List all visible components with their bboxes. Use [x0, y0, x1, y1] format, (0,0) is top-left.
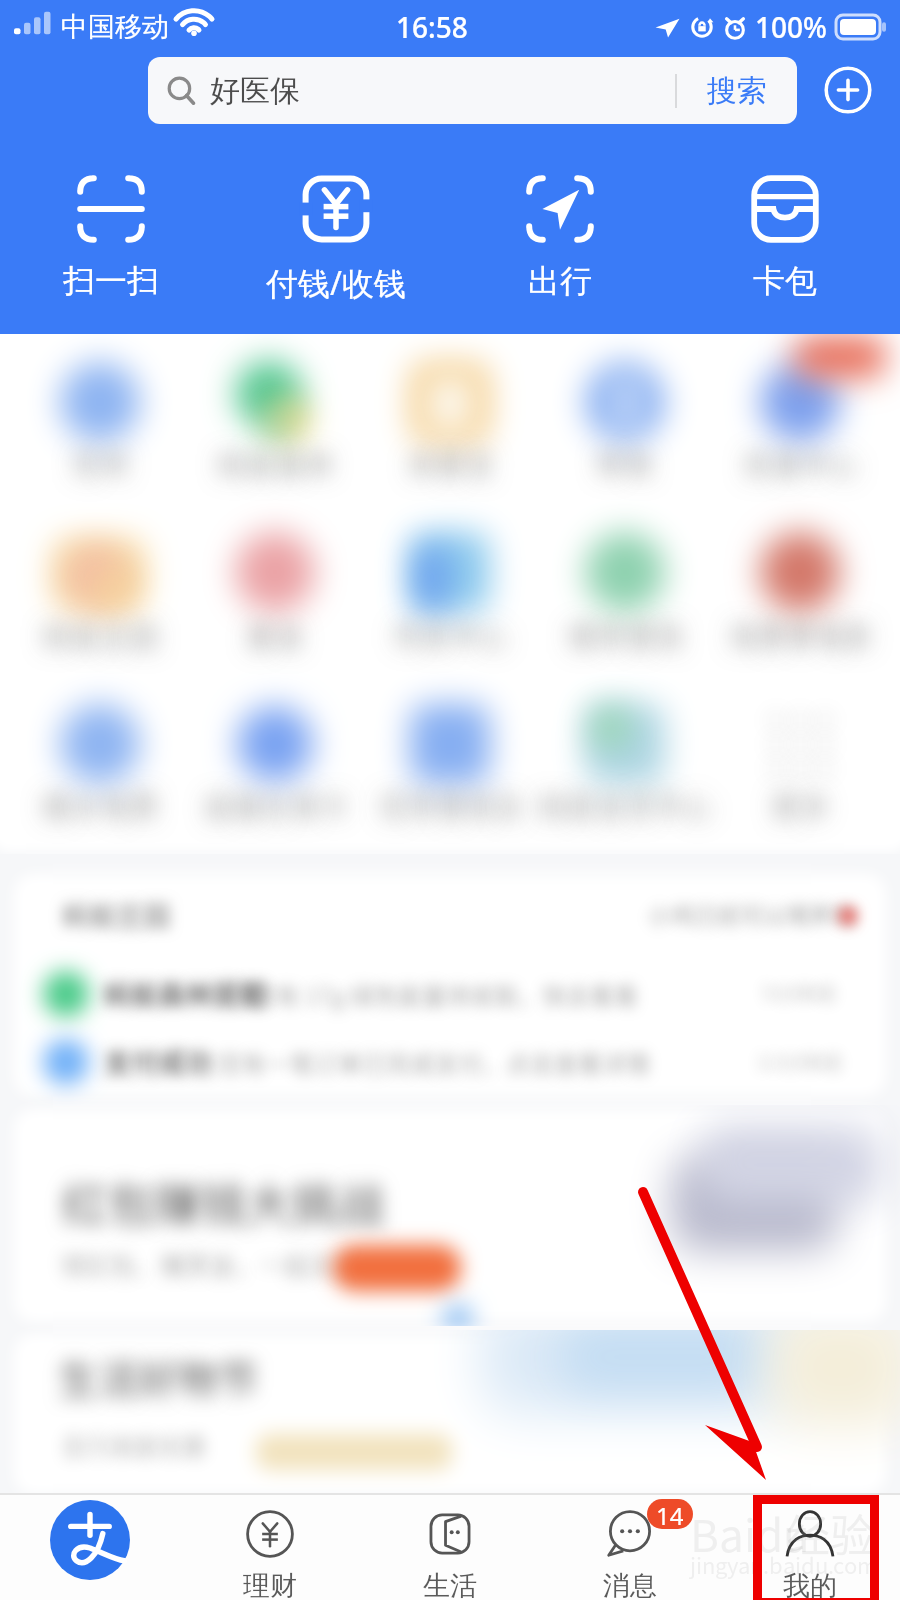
staticText: 理财 [243, 1569, 297, 1600]
button[interactable]: 首页 [0, 1495, 180, 1600]
button[interactable]: 我的 [720, 1495, 900, 1600]
button[interactable]: 理财 [180, 1495, 360, 1600]
staticText: 扫一扫 [63, 261, 159, 301]
staticText: 16:58 [396, 8, 468, 46]
button[interactable]: 扫一扫 [11, 167, 211, 303]
staticText: 付钱/收钱 [266, 261, 406, 305]
staticText: 生活 [423, 1569, 477, 1600]
staticText: 中国移动 [61, 10, 169, 44]
button[interactable]: 14 [540, 1495, 720, 1600]
staticText: 好医保 [210, 72, 300, 110]
button[interactable]: 好医保 [148, 57, 797, 124]
staticText: 出行 [528, 261, 592, 301]
button[interactable]: 出行 [460, 167, 660, 303]
staticText: 100% [755, 8, 827, 46]
staticText: 卡包 [753, 261, 817, 301]
button[interactable]: 添加 [824, 66, 872, 114]
staticText: 我的 [783, 1569, 837, 1600]
button[interactable]: 生活 [360, 1495, 540, 1600]
staticText: 14 [656, 1499, 684, 1529]
button[interactable]: 卡包 [685, 167, 885, 303]
button[interactable]: 付钱/收钱 [236, 167, 436, 307]
staticText: 搜索 [707, 72, 767, 110]
staticText: 消息 [603, 1569, 657, 1600]
